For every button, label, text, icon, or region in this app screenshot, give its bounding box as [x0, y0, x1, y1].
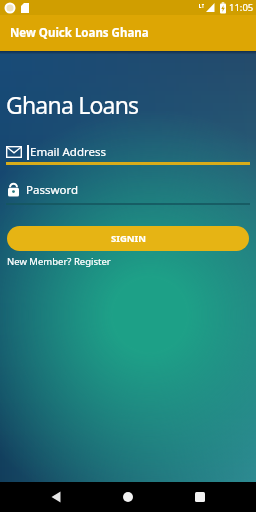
button[interactable]: Email Address [0, 144, 256, 165]
button[interactable] [104, 482, 152, 512]
button[interactable] [32, 482, 80, 512]
button[interactable]: Password [0, 182, 256, 205]
button[interactable]: New Quick Loans Ghana [0, 15, 256, 51]
button[interactable]: SIGNIN [7, 226, 249, 251]
button[interactable]: New Member? Register [7, 255, 111, 268]
staticText: New Quick Loans Ghana [10, 25, 149, 41]
staticText: SIGNIN [111, 232, 146, 245]
staticText: Password [26, 182, 79, 198]
staticText: 11:05 [229, 1, 254, 14]
staticText: Email Address [30, 144, 107, 160]
button[interactable] [176, 482, 224, 512]
staticText: Ghana Loans [6, 89, 139, 120]
